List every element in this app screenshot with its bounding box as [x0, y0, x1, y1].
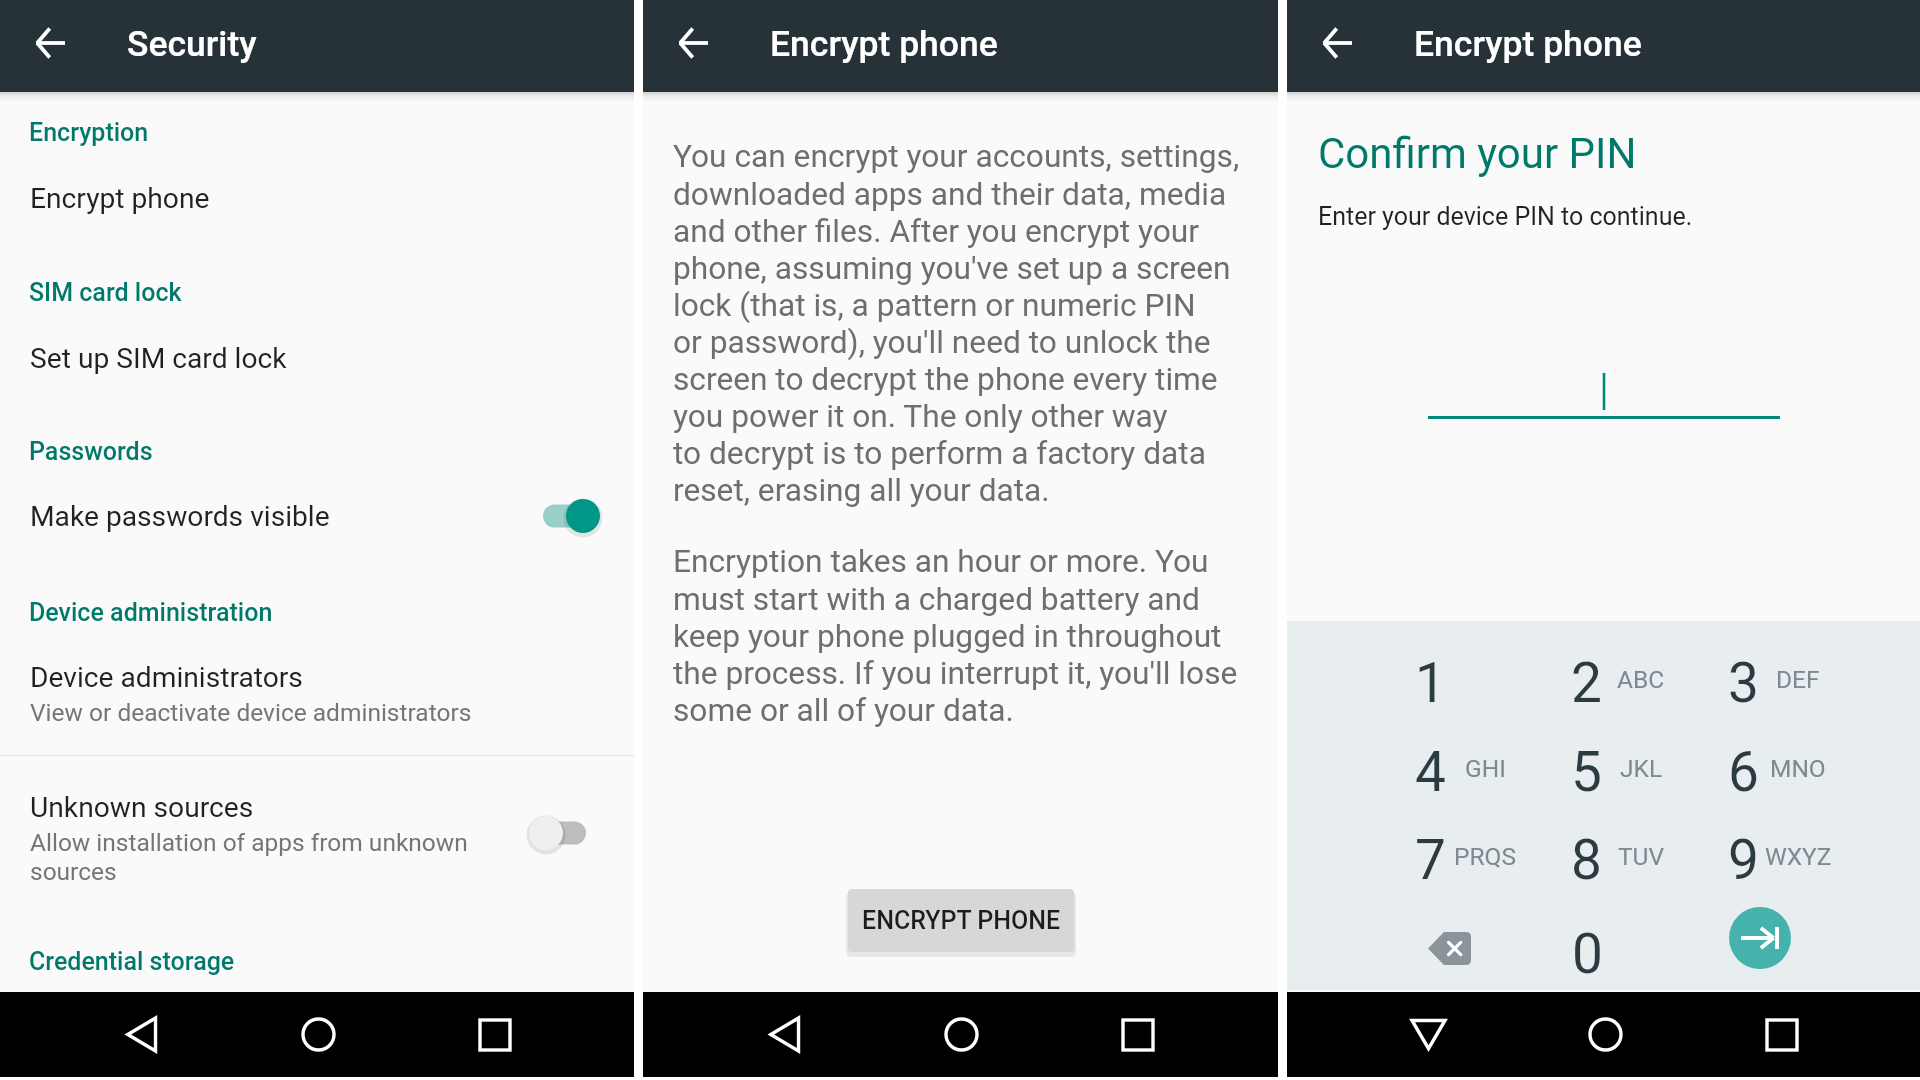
button[interactable]: Device administrators [0, 650, 634, 748]
staticText: Enter your device PIN to continue. [1318, 202, 1693, 231]
button[interactable]: Navigate up [1309, 15, 1365, 71]
staticText: Allow installation of apps from unknown … [30, 828, 468, 886]
staticText: Device administrators [30, 661, 303, 694]
button[interactable]: 9 [1667, 813, 1823, 901]
button[interactable]: Recent apps [1739, 992, 1825, 1077]
staticText: Security [127, 23, 257, 65]
staticText: Encryption [29, 118, 149, 147]
button[interactable]: 2 [1510, 636, 1666, 724]
button[interactable]: Make passwords visible [0, 478, 634, 558]
staticText: 7 [1415, 828, 1446, 892]
staticText: DEF [1776, 665, 1820, 694]
staticText: 8 [1571, 828, 1602, 892]
button[interactable]: Home [1562, 992, 1648, 1077]
button[interactable]: 5 [1510, 725, 1666, 813]
button[interactable]: Home [275, 992, 361, 1077]
button[interactable]: Navigate up [22, 15, 78, 71]
staticText: JKL [1620, 754, 1663, 783]
staticText: ABC [1617, 665, 1665, 694]
staticText: 6 [1728, 740, 1759, 804]
button[interactable]: Recent apps [452, 992, 538, 1077]
button[interactable]: Set up SIM card lock [0, 320, 634, 398]
staticText: 1 [1415, 651, 1446, 715]
button[interactable]: On [533, 486, 629, 546]
button[interactable]: ENCRYPT PHONE [848, 889, 1074, 952]
staticText: 5 [1571, 740, 1602, 804]
staticText: View or deactivate device administrators [30, 698, 472, 727]
staticText: Set up SIM card lock [30, 342, 287, 375]
staticText: WXYZ [1765, 842, 1832, 871]
staticText: Encrypt phone [1414, 23, 1642, 65]
button[interactable]: 3 [1667, 636, 1823, 724]
staticText: GHI [1465, 754, 1506, 783]
staticText: MNO [1770, 754, 1826, 783]
staticText: Device administration [29, 598, 273, 627]
button[interactable]: Enter [1729, 907, 1791, 969]
button[interactable]: Back [98, 992, 184, 1077]
button[interactable]: 4 [1354, 725, 1510, 813]
button[interactable]: Back [741, 992, 827, 1077]
button[interactable]: Off [533, 803, 629, 863]
staticText: TUV [1618, 842, 1665, 871]
button[interactable]: Encrypt phone [0, 160, 634, 238]
staticText: Encrypt phone [30, 182, 210, 215]
staticText: Confirm your PIN [1318, 129, 1637, 178]
staticText: Unknown sources [30, 791, 254, 824]
staticText: 0 [1572, 922, 1603, 986]
staticText: 9 [1728, 828, 1759, 892]
staticText: SIM card lock [29, 278, 182, 307]
staticText: ENCRYPT PHONE [862, 906, 1061, 935]
staticText: Passwords [29, 437, 153, 466]
button[interactable]: 7 [1354, 813, 1510, 901]
button[interactable]: Unknown sources [0, 768, 634, 904]
staticText: 3 [1728, 651, 1759, 715]
button[interactable]: Back [1385, 992, 1471, 1077]
staticText: Encrypt phone [770, 23, 998, 65]
staticText: 4 [1415, 740, 1446, 804]
button[interactable]: 1 [1354, 636, 1510, 724]
staticText: You can encrypt your accounts, settings,… [673, 138, 1240, 508]
button[interactable]: Delete [1371, 904, 1527, 992]
button[interactable]: 6 [1667, 725, 1823, 813]
staticText: Make passwords visible [30, 500, 330, 533]
button[interactable]: Navigate up [665, 15, 721, 71]
staticText: Credential storage [29, 947, 235, 976]
button[interactable]: Recent apps [1095, 992, 1181, 1077]
staticText: Encryption takes an hour or more. You mu… [673, 543, 1238, 728]
staticText: 2 [1571, 651, 1602, 715]
staticText: PRQS [1454, 842, 1516, 871]
button[interactable]: Home [918, 992, 1004, 1077]
button[interactable]: 0 [1511, 907, 1667, 995]
button[interactable]: 8 [1510, 813, 1666, 901]
